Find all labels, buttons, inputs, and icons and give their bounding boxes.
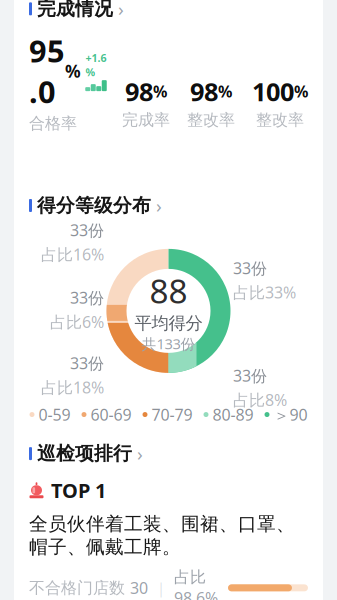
staticText: 不合格门店数 xyxy=(29,578,125,598)
staticText: 33份 xyxy=(233,365,267,386)
staticText: 占比18% xyxy=(41,377,104,398)
staticText: % xyxy=(153,81,167,102)
staticText: | xyxy=(157,578,165,598)
staticText: ＞90 xyxy=(273,404,307,425)
staticText: 98 xyxy=(190,74,218,108)
button[interactable]: 完成情况 xyxy=(14,0,323,21)
staticText: 98 xyxy=(125,74,153,108)
staticText: 70-79 xyxy=(151,404,192,425)
button[interactable]: TOP 1 xyxy=(14,477,323,600)
staticText: 95.0 xyxy=(29,30,65,112)
staticText: 60-69 xyxy=(90,404,131,425)
staticText: 占比98.6% xyxy=(174,567,218,600)
staticText: 33份 xyxy=(70,219,104,241)
staticText: 巡检项排行 xyxy=(37,442,132,465)
staticText: % xyxy=(218,81,232,102)
staticText: % xyxy=(294,81,308,102)
staticText: 共133份 xyxy=(141,334,195,353)
staticText: 33份 xyxy=(233,257,267,279)
staticText: 占比8% xyxy=(233,389,287,410)
staticText: 占比6% xyxy=(50,311,104,332)
staticText: 得分等级分布 xyxy=(37,194,151,217)
staticText: 80-89 xyxy=(212,404,253,425)
staticText: › xyxy=(118,0,124,21)
staticText: 占比16% xyxy=(41,244,104,265)
button[interactable]: 巡检项排行 xyxy=(14,441,323,466)
staticText: % xyxy=(65,59,81,82)
staticText: 完成率 xyxy=(122,110,170,130)
button[interactable]: 得分等级分布 xyxy=(14,193,323,218)
staticText: 30 xyxy=(130,577,148,598)
staticText: 88 xyxy=(149,268,187,313)
staticText: 平均得分 xyxy=(134,313,202,334)
staticText: +1.6% xyxy=(85,51,106,79)
staticText: 33份 xyxy=(70,352,104,374)
staticText: 整改率 xyxy=(256,110,304,130)
staticText: › xyxy=(137,441,143,466)
staticText: 33份 xyxy=(70,287,104,308)
staticText: 占比33% xyxy=(233,282,296,303)
staticText: 完成情况 xyxy=(37,0,113,20)
staticText: › xyxy=(156,193,162,218)
staticText: 合格率 xyxy=(29,114,77,133)
staticText: 0-59 xyxy=(38,404,70,425)
staticText: TOP 1 xyxy=(51,477,106,504)
staticText: 整改率 xyxy=(187,110,235,130)
staticText: 全员伙伴着工装、围裙、口罩、帽子、佩戴工牌。 xyxy=(29,513,295,558)
staticText: 100 xyxy=(252,74,294,108)
